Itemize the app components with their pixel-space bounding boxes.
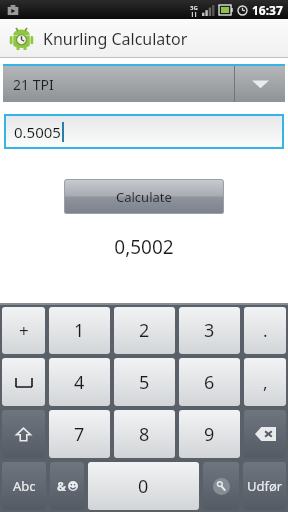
- button[interactable]: 8: [114, 410, 175, 458]
- button[interactable]: 7: [49, 410, 110, 458]
- button[interactable]: 1: [49, 307, 110, 354]
- staticText: 6: [204, 370, 215, 395]
- button[interactable]: 3: [179, 307, 240, 354]
- staticText: 0: [138, 474, 149, 499]
- staticText: 21 TPI: [13, 75, 234, 94]
- staticText: Udfør: [247, 477, 283, 495]
- button[interactable]: 21 TPI: [3, 66, 285, 102]
- staticText: 2: [139, 318, 150, 343]
- button[interactable]: Symbols and emoji: [50, 462, 84, 510]
- button[interactable]: 0: [88, 462, 199, 510]
- staticText: 1: [74, 318, 85, 343]
- staticText: 7: [74, 422, 85, 447]
- staticText: 0,5002: [0, 234, 288, 260]
- staticText: 4: [74, 370, 85, 395]
- button[interactable]: 2: [114, 307, 175, 354]
- staticText: +: [19, 319, 29, 342]
- staticText: 3G: [190, 4, 198, 12]
- button[interactable]: Abc: [2, 462, 46, 510]
- button[interactable]: 4: [49, 358, 110, 406]
- staticText: 8: [139, 422, 150, 447]
- button[interactable]: Space: [2, 358, 45, 406]
- button[interactable]: Backspace: [244, 410, 286, 458]
- button[interactable]: 6: [179, 358, 240, 406]
- button[interactable]: Udfør: [243, 462, 286, 510]
- staticText: ,: [263, 371, 268, 394]
- button[interactable]: ,: [244, 358, 286, 406]
- staticText: 5: [139, 370, 150, 395]
- button[interactable]: .: [244, 307, 286, 354]
- button[interactable]: Calculate: [64, 179, 224, 214]
- button[interactable]: +: [2, 307, 45, 354]
- button[interactable]: 9: [179, 410, 240, 458]
- staticText: 3: [204, 318, 215, 343]
- button[interactable]: 5: [114, 358, 175, 406]
- staticText: 9: [204, 422, 215, 447]
- staticText: 0.5005: [14, 122, 61, 142]
- staticText: 16:37: [252, 2, 283, 18]
- button[interactable]: Settings: [203, 462, 239, 510]
- staticText: Knurling Calculator: [43, 28, 188, 50]
- staticText: .: [263, 319, 268, 342]
- staticText: &: [57, 478, 67, 494]
- button[interactable]: Shift: [2, 410, 45, 458]
- staticText: Calculate: [116, 188, 172, 206]
- button[interactable]: 0.5005: [6, 116, 282, 147]
- staticText: Abc: [13, 477, 36, 495]
